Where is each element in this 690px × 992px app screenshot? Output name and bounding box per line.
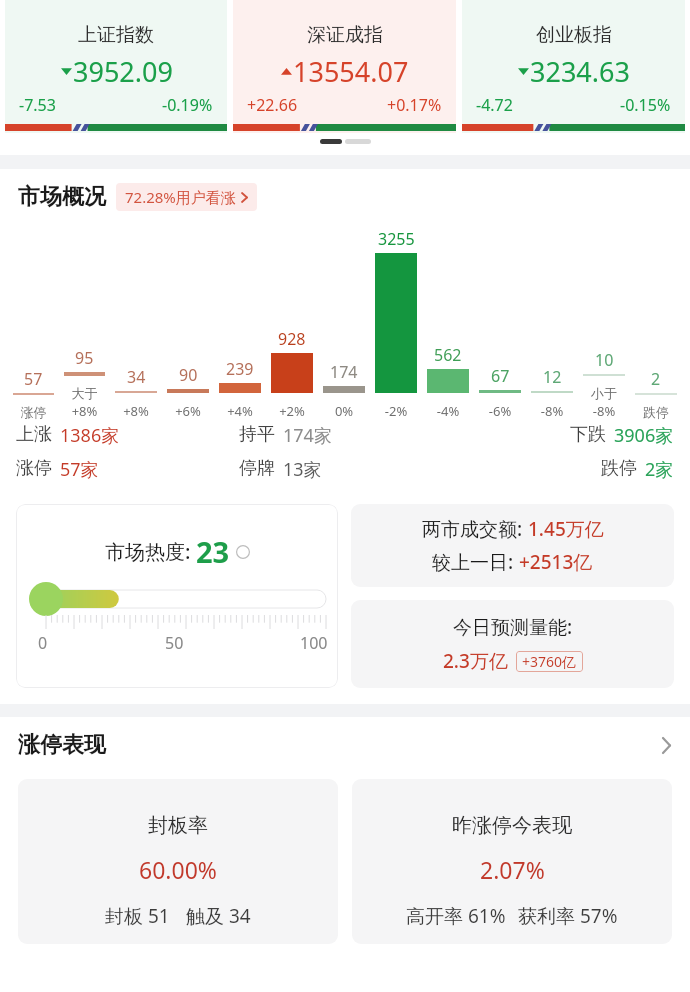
staticText: +22.66 xyxy=(247,94,298,116)
staticText: 2.3万亿 xyxy=(443,648,508,674)
staticText: 239 xyxy=(226,358,254,380)
staticText: +8% xyxy=(110,402,162,420)
staticText: 3234.63 xyxy=(530,53,630,90)
staticText: 市场概况 xyxy=(18,183,106,211)
staticText: 60.00% xyxy=(139,854,217,885)
staticText: 13家 xyxy=(283,457,322,482)
staticText: 1.45万亿 xyxy=(528,516,604,542)
staticText: +2% xyxy=(266,402,318,420)
staticText: 3906家 xyxy=(614,423,674,448)
staticText: 市场热度: xyxy=(105,538,196,565)
staticText: 触及 34 xyxy=(186,903,251,929)
button[interactable]: 涨停表现 xyxy=(18,731,672,759)
staticText: 下跌 xyxy=(570,423,606,446)
staticText: 3952.09 xyxy=(73,53,173,90)
staticText: -0.19% xyxy=(162,94,213,116)
button[interactable]: 市场概况 xyxy=(18,183,690,211)
staticText: 57家 xyxy=(60,457,99,482)
staticText: 小于 -8% xyxy=(578,385,630,420)
staticText: 2 xyxy=(651,368,661,390)
button[interactable]: 市场热度: xyxy=(16,504,338,688)
staticText: 3255 xyxy=(378,228,415,250)
staticText: -0.15% xyxy=(620,94,671,116)
staticText: 67 xyxy=(491,365,510,387)
staticText: 72.28%用户看涨 xyxy=(125,187,236,207)
staticText: -8% xyxy=(526,402,578,420)
staticText: 174 xyxy=(330,361,358,383)
staticText: +0.17% xyxy=(387,94,442,116)
staticText: 持平 xyxy=(239,423,275,446)
staticText: 封板率 xyxy=(148,813,208,838)
staticText: 上涨 xyxy=(16,423,52,446)
staticText: 昨涨停今表现 xyxy=(452,813,572,838)
staticText: 高开率 61% xyxy=(406,903,506,929)
staticText: 跌停 xyxy=(630,404,682,420)
staticText: 34 xyxy=(127,366,146,388)
staticText: 深证成指 xyxy=(307,23,383,47)
button[interactable]: 上证指数 xyxy=(5,0,227,133)
staticText: 今日预测量能: xyxy=(453,614,573,640)
staticText: 较上一日: xyxy=(432,549,519,575)
staticText: 12 xyxy=(543,366,562,388)
staticText: 大于 +8% xyxy=(59,385,110,420)
staticText: 停牌 xyxy=(239,457,275,480)
staticText: 2.07% xyxy=(480,854,545,885)
staticText: 928 xyxy=(278,328,306,350)
staticText: +6% xyxy=(162,402,214,420)
staticText: 57 xyxy=(24,368,43,390)
staticText: -6% xyxy=(474,402,526,420)
staticText: 上证指数 xyxy=(78,23,154,47)
staticText: 0 xyxy=(38,632,48,654)
staticText: 13554.07 xyxy=(293,53,409,90)
staticText: 50 xyxy=(165,632,184,654)
staticText: 10 xyxy=(595,349,614,371)
staticText: -2% xyxy=(370,402,422,420)
staticText: +3760亿 xyxy=(522,652,577,671)
staticText: 0% xyxy=(318,402,370,420)
button[interactable]: 封板率 xyxy=(18,779,338,944)
staticText: 创业板指 xyxy=(536,23,612,47)
staticText: 获利率 57% xyxy=(518,903,618,929)
staticText: -4.72 xyxy=(476,94,513,116)
staticText: 100 xyxy=(300,632,328,654)
button[interactable]: 今日预测量能: xyxy=(351,600,674,688)
staticText: 174家 xyxy=(283,423,332,448)
staticText: 封板 51 xyxy=(105,903,170,929)
staticText: 跌停 xyxy=(601,457,637,480)
button[interactable]: 创业板指 xyxy=(462,0,685,133)
staticText: -7.53 xyxy=(19,94,56,116)
staticText: -4% xyxy=(422,402,474,420)
button[interactable]: 两市成交额: xyxy=(351,504,674,587)
staticText: 两市成交额: xyxy=(422,516,528,542)
staticText: 23 xyxy=(196,532,230,571)
button[interactable]: 深证成指 xyxy=(233,0,456,133)
staticText: 95 xyxy=(75,347,94,369)
staticText: 涨停 xyxy=(16,457,52,480)
button[interactable]: 72.28%用户看涨 xyxy=(125,187,248,207)
other: 查看涨停表现详情 xyxy=(661,736,672,755)
staticText: 涨停 xyxy=(8,404,59,420)
staticText: 涨停表现 xyxy=(18,731,106,759)
staticText: 90 xyxy=(179,364,198,386)
button[interactable]: 昨涨停今表现 xyxy=(352,779,672,944)
staticText: 1386家 xyxy=(60,423,120,448)
staticText: 562 xyxy=(434,344,462,366)
staticText: +4% xyxy=(214,402,266,420)
staticText: +2513亿 xyxy=(519,549,593,575)
staticText: 2家 xyxy=(645,457,674,482)
